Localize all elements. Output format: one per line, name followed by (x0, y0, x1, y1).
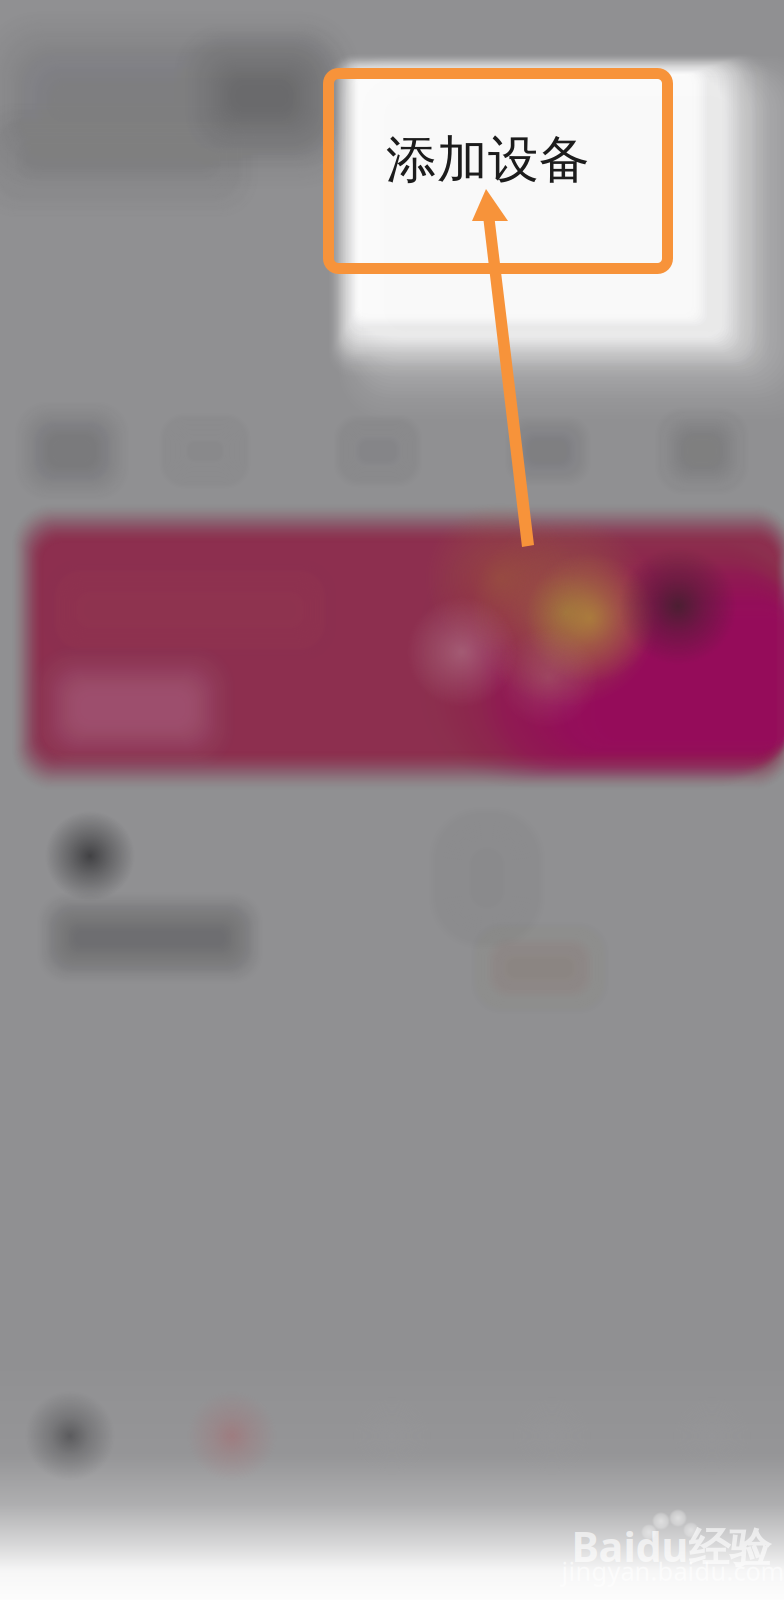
staticText: Baidu经验 (571, 1518, 770, 1573)
staticText: 添加设备 (386, 129, 590, 191)
staticText: jingyan.baidu.com (561, 1554, 784, 1588)
button[interactable]: 添加设备 (328, 73, 667, 268)
